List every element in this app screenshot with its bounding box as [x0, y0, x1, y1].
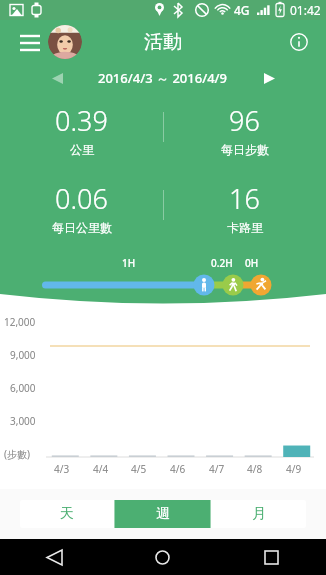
button[interactable]: 16 [163, 180, 326, 235]
staticText: 1H [122, 256, 136, 270]
staticText: 週 [156, 505, 170, 523]
staticText: 0.2H [211, 256, 233, 270]
staticText: 4G [234, 2, 250, 18]
staticText: 4/9 [286, 462, 302, 476]
staticText: 4/3 [54, 462, 70, 476]
staticText: 公里 [70, 142, 94, 157]
staticText: 活動 [144, 30, 182, 54]
staticText: 3,000 [10, 414, 36, 428]
button[interactable]: Home [108, 539, 217, 575]
staticText: 96 [229, 102, 260, 139]
button[interactable]: Previous week [42, 64, 72, 92]
button[interactable]: 月 [211, 500, 306, 528]
button[interactable]: 96 [163, 102, 326, 157]
button[interactable]: Back [0, 539, 108, 575]
button[interactable]: 0.39 [0, 102, 163, 157]
button[interactable]: Recent apps [217, 539, 326, 575]
button[interactable]: 0.06 [0, 180, 163, 235]
staticText: 01:42 [290, 2, 321, 18]
staticText: 每日步數 [221, 142, 269, 157]
staticText: 4/7 [209, 462, 225, 476]
staticText: 0.06 [55, 180, 108, 217]
staticText: 6,000 [10, 381, 36, 395]
staticText: 4/6 [170, 462, 186, 476]
staticText: 12,000 [4, 315, 36, 329]
staticText: 9,000 [10, 348, 36, 362]
staticText: 4/5 [131, 462, 147, 476]
button[interactable]: Next week [254, 64, 284, 92]
button[interactable]: Profile [48, 25, 82, 59]
staticText: 2016/4/3 ～ 2016/4/9 [98, 69, 228, 87]
button[interactable]: 週 [115, 500, 210, 528]
staticText: 16 [229, 180, 260, 217]
staticText: 4/4 [93, 462, 109, 476]
staticText: (步數) [4, 447, 30, 461]
staticText: 0H [245, 256, 259, 270]
button[interactable]: Menu [16, 28, 44, 56]
button[interactable]: 天 [20, 500, 114, 528]
staticText: 卡路里 [227, 220, 263, 235]
staticText: 0.39 [55, 102, 108, 139]
staticText: 天 [60, 505, 74, 523]
staticText: 每日公里數 [52, 220, 112, 235]
button[interactable] [0, 272, 326, 298]
staticText: 月 [252, 505, 266, 523]
button[interactable]: Information [284, 27, 314, 57]
staticText: 4/8 [247, 462, 263, 476]
